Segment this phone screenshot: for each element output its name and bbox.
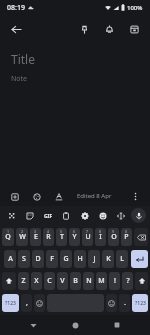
button[interactable]: . (119, 294, 130, 312)
button[interactable]: Recent apps (108, 316, 126, 334)
staticText: Z (21, 276, 26, 286)
staticText: ?123 (135, 300, 146, 307)
staticText: E (34, 232, 38, 242)
button[interactable]: Clipboard (58, 208, 74, 224)
button[interactable]: Home (66, 316, 84, 334)
button[interactable]: T (56, 228, 67, 246)
button[interactable]: Pin (74, 19, 94, 39)
button[interactable]: O (108, 228, 119, 246)
button[interactable]: X (31, 272, 42, 290)
button[interactable]: C (44, 272, 55, 290)
button[interactable]: Symbols (132, 294, 148, 312)
staticText: M (98, 276, 105, 286)
button[interactable]: G (60, 250, 72, 268)
staticText: O (111, 232, 117, 242)
button[interactable]: Voice input (131, 208, 146, 223)
button[interactable]: Keyboard themes (4, 208, 20, 224)
staticText: 0 (125, 229, 128, 234)
staticText: W (19, 232, 26, 242)
staticText: 8 (99, 229, 102, 234)
staticText: 3 (34, 229, 37, 234)
button[interactable]: Archive (124, 19, 144, 39)
button[interactable]: V (57, 272, 68, 290)
button[interactable]: D (32, 250, 44, 268)
button[interactable]: Reminder (99, 19, 119, 39)
button[interactable]: R (43, 228, 54, 246)
button[interactable]: Back (6, 19, 26, 39)
staticText: S (22, 254, 26, 264)
staticText: Q (5, 232, 11, 242)
button[interactable]: Emoji (34, 294, 45, 312)
button[interactable]: Y (69, 228, 80, 246)
button[interactable]: Color palette (28, 188, 45, 205)
button[interactable]: Symbols (2, 294, 19, 312)
button[interactable]: I (95, 228, 106, 246)
staticText: F (50, 254, 54, 264)
staticText: . (124, 298, 126, 308)
staticText: 1 (7, 229, 10, 234)
button[interactable]: Stickers (22, 208, 38, 224)
button[interactable]: Shift (135, 272, 148, 290)
button[interactable]: E (30, 228, 41, 246)
button[interactable]: ? (122, 272, 133, 290)
button[interactable]: H (74, 250, 86, 268)
button[interactable]: GIF (40, 208, 56, 224)
button[interactable]: A (4, 250, 16, 268)
button[interactable]: B (70, 272, 81, 290)
button[interactable]: Emoji (95, 208, 111, 224)
staticText: , (26, 298, 28, 308)
button[interactable]: Text formatting (50, 188, 67, 205)
button[interactable]: Back (24, 316, 42, 334)
staticText: B (73, 276, 78, 286)
staticText: 9 (112, 229, 115, 234)
button[interactable]: J (88, 250, 100, 268)
button[interactable]: Z (18, 272, 29, 290)
staticText: 7 (86, 229, 89, 234)
button[interactable]: Add (6, 188, 23, 205)
staticText: A (8, 254, 13, 264)
staticText: L (120, 254, 124, 264)
staticText: N (86, 276, 92, 286)
button[interactable]: W (16, 228, 28, 246)
staticText: 2 (21, 229, 24, 234)
staticText: G (63, 254, 69, 264)
staticText: 4 (47, 229, 50, 234)
button[interactable]: More options (127, 188, 144, 205)
staticText: V (60, 276, 65, 286)
button[interactable]: U (82, 228, 93, 246)
button[interactable]: S (18, 250, 30, 268)
button[interactable]: Emoji (106, 294, 117, 312)
button[interactable]: Shift (2, 272, 16, 290)
staticText: 100% (127, 4, 143, 12)
staticText: H (77, 254, 83, 264)
staticText: P (124, 232, 129, 242)
button[interactable]: Settings (77, 208, 93, 224)
button[interactable]: Backspace (134, 228, 148, 246)
staticText: T (60, 232, 64, 242)
staticText: I (99, 232, 102, 242)
staticText: C (47, 276, 52, 286)
staticText: Y (72, 232, 77, 242)
button[interactable]: Q (2, 228, 14, 246)
staticText: X (34, 276, 39, 286)
button[interactable]: Text editing (113, 208, 129, 224)
staticText: U (85, 232, 91, 242)
button[interactable]: K (102, 250, 114, 268)
button[interactable]: P (121, 228, 132, 246)
button[interactable]: F (46, 250, 58, 268)
staticText: ?123 (5, 300, 16, 307)
button[interactable]: N (83, 272, 94, 290)
staticText: 08:19 (7, 3, 25, 13)
button[interactable]: Title (11, 43, 139, 186)
staticText: R (46, 232, 51, 242)
button[interactable]: , (21, 294, 32, 312)
staticText: K (106, 254, 111, 264)
button[interactable]: M (96, 272, 107, 290)
staticText: Title (11, 51, 35, 67)
button[interactable]: Enter (131, 250, 148, 268)
staticText: ! (114, 276, 116, 286)
button[interactable]: L (116, 250, 128, 268)
button[interactable]: ! (109, 272, 120, 290)
staticText: Edited 8 Apr (77, 192, 112, 200)
